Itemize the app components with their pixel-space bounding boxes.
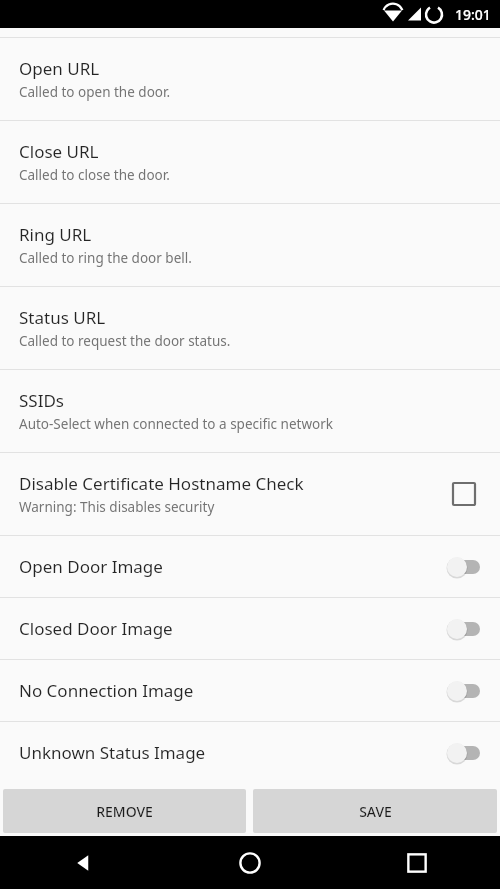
button[interactable]: Home bbox=[166, 836, 333, 889]
staticText: SSIDs bbox=[19, 389, 64, 412]
staticText: REMOVE bbox=[96, 802, 153, 821]
button[interactable]: REMOVE bbox=[3, 789, 246, 833]
button[interactable]: Recent apps bbox=[333, 836, 500, 889]
button[interactable]: Closed Door Image toggle bbox=[438, 607, 486, 651]
button[interactable]: No Connection Image bbox=[0, 660, 500, 721]
staticText: Called to close the door. bbox=[19, 166, 170, 184]
staticText: Called to ring the door bell. bbox=[19, 249, 192, 267]
button[interactable]: Closed Door Image bbox=[0, 598, 500, 659]
button[interactable]: Unknown Status Image bbox=[0, 722, 500, 783]
staticText: Ring URL bbox=[19, 223, 92, 246]
button[interactable]: Ring URL bbox=[0, 204, 500, 286]
staticText: Warning: This disables security bbox=[19, 498, 215, 516]
staticText: Unknown Status Image bbox=[19, 741, 206, 764]
button[interactable]: No Connection Image toggle bbox=[438, 669, 486, 713]
button[interactable]: Open Door Image toggle bbox=[438, 545, 486, 589]
button[interactable]: Status URL bbox=[0, 287, 500, 369]
staticText: 19:01 bbox=[455, 5, 491, 24]
staticText: Closed Door Image bbox=[19, 617, 173, 640]
button[interactable]: Disable Certificate Hostname Check bbox=[0, 453, 500, 535]
button[interactable]: SAVE bbox=[253, 789, 497, 833]
button[interactable]: Back bbox=[0, 836, 166, 889]
staticText: Status URL bbox=[19, 306, 106, 329]
staticText: Open URL bbox=[19, 57, 100, 80]
button[interactable]: Open Door Image bbox=[0, 536, 500, 597]
staticText: SAVE bbox=[359, 802, 392, 821]
button[interactable]: Close URL bbox=[0, 121, 500, 203]
button[interactable]: SSIDs bbox=[0, 370, 500, 452]
staticText: Open Door Image bbox=[19, 555, 163, 578]
staticText: Called to request the door status. bbox=[19, 332, 231, 350]
staticText: Disable Certificate Hostname Check bbox=[19, 472, 304, 495]
button[interactable]: Disable Certificate Hostname Check bbox=[442, 472, 486, 516]
staticText: No Connection Image bbox=[19, 679, 194, 702]
staticText: Close URL bbox=[19, 140, 99, 163]
staticText: Called to open the door. bbox=[19, 83, 170, 101]
staticText: Auto-Select when connected to a specific… bbox=[19, 415, 333, 433]
button[interactable]: Open URL bbox=[0, 38, 500, 120]
button[interactable]: Unknown Status Image toggle bbox=[438, 731, 486, 775]
